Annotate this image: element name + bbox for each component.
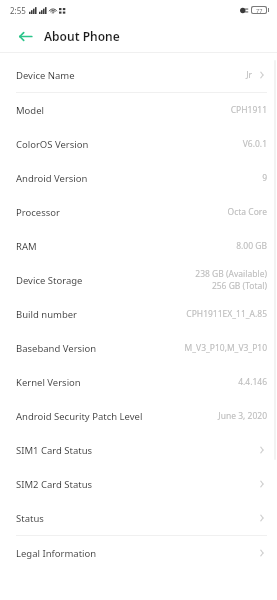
staticText: Build number — [16, 308, 78, 321]
staticText: CPH1911EX_11_A.85 — [186, 308, 267, 320]
staticText: CPH1911 — [230, 104, 267, 116]
staticText: Device Storage — [16, 274, 83, 287]
staticText: 77 — [256, 7, 263, 13]
staticText: 256 GB (Total) — [211, 280, 267, 292]
button[interactable]: Build number — [0, 297, 277, 331]
staticText: Android Security Patch Level — [16, 410, 143, 423]
staticText: Baseband Version — [16, 342, 97, 355]
staticText: 8.00 GB — [236, 240, 267, 252]
staticText: About Phone — [44, 28, 120, 44]
staticText: SIM1 Card Status — [16, 444, 93, 457]
staticText: Jr — [246, 69, 252, 81]
staticText: June 3, 2020 — [218, 410, 267, 422]
button[interactable]: SIM1 Card Status — [0, 433, 277, 467]
button[interactable]: Back — [14, 25, 36, 47]
staticText: M_V3_P10,M_V3_P10 — [184, 342, 267, 354]
button[interactable]: Legal Information — [0, 536, 277, 570]
button[interactable]: Baseband Version — [0, 331, 277, 365]
staticText: ColorOS Version — [16, 138, 89, 151]
staticText: 9 — [262, 172, 267, 184]
staticText: Model — [16, 104, 45, 117]
staticText: SIM2 Card Status — [16, 478, 93, 491]
staticText: 238 GB (Available) — [195, 268, 267, 280]
staticText: Kernel Version — [16, 376, 81, 389]
button[interactable]: Status — [0, 501, 277, 535]
staticText: Device Name — [16, 69, 75, 82]
button[interactable]: SIM2 Card Status — [0, 467, 277, 501]
button[interactable]: Model — [0, 93, 277, 127]
staticText: Octa Core — [227, 206, 267, 218]
staticText: Processor — [16, 206, 60, 219]
staticText: Legal Information — [16, 547, 97, 560]
staticText: Status — [16, 512, 44, 525]
staticText: V6.0.1 — [242, 138, 267, 150]
button[interactable]: Kernel Version — [0, 365, 277, 399]
button[interactable]: ColorOS Version — [0, 127, 277, 161]
staticText: 4.4.146 — [238, 376, 267, 388]
button[interactable]: Android Security Patch Level — [0, 399, 277, 433]
button[interactable]: RAM — [0, 229, 277, 263]
button[interactable]: Android Version — [0, 161, 277, 195]
staticText: 2:55 — [10, 5, 26, 16]
staticText: Android Version — [16, 172, 88, 185]
button[interactable]: Device Storage — [0, 263, 277, 297]
staticText: RAM — [16, 240, 37, 253]
button[interactable]: Processor — [0, 195, 277, 229]
button[interactable]: Device Name — [0, 58, 277, 92]
